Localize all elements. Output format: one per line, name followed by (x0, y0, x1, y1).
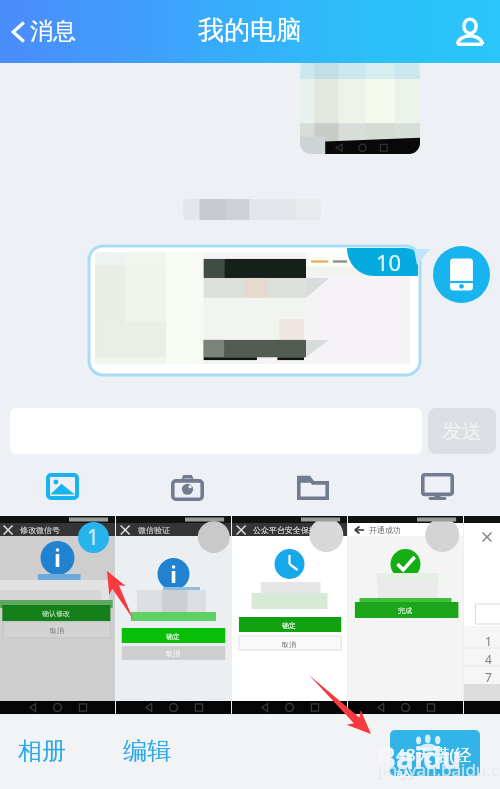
button[interactable]: Screenshot 5 (464, 516, 500, 714)
staticText: 确定 (282, 621, 296, 630)
button[interactable]: Device avatar (433, 246, 490, 303)
button[interactable]: Screenshot 2 (116, 516, 231, 714)
staticText: 修改微信号 (20, 525, 60, 535)
staticText: 编辑 (123, 736, 171, 766)
button[interactable]: 消息 (9, 17, 76, 46)
button[interactable]: Gallery (0, 459, 125, 514)
staticText: 完成 (398, 606, 412, 615)
staticText: 我的电脑 (198, 14, 302, 47)
staticText: 10 (376, 247, 402, 275)
button[interactable]: Screenshot 3 (232, 516, 347, 714)
staticText: 1 (485, 633, 492, 649)
staticText: 开通成功 (369, 525, 401, 535)
button[interactable]: Screenshot 4 (348, 516, 463, 714)
staticText: 确定 (166, 632, 180, 641)
button[interactable]: Contact profile (453, 15, 487, 49)
button[interactable]: 编辑 (123, 736, 171, 766)
staticText: 4 (485, 651, 492, 667)
button[interactable]: 相册 (18, 736, 66, 766)
staticText: 相册 (18, 736, 66, 766)
staticText: 发送 (442, 419, 482, 444)
staticText: 取消 (166, 649, 180, 658)
staticText: 确认修改 (42, 609, 70, 618)
button[interactable]: 发送 (428, 408, 496, 454)
staticText: jingyan.baidu.com (378, 758, 500, 781)
staticText: Baidu (376, 737, 462, 778)
button[interactable]: Screen (375, 459, 500, 514)
button[interactable] (89, 246, 420, 375)
button[interactable]: Camera (125, 459, 250, 514)
staticText: 48天诺(经验 (396, 743, 480, 776)
button[interactable] (183, 199, 321, 220)
staticText: 取消 (282, 640, 296, 649)
staticText: 7 (485, 669, 492, 685)
button[interactable]: Files (250, 459, 375, 514)
staticText: 消息 (30, 17, 76, 46)
button[interactable] (300, 58, 420, 154)
staticText: 公众平台安全保护 (253, 525, 317, 535)
staticText: 取消 (50, 626, 64, 635)
staticText: 微信验证 (138, 525, 170, 535)
staticText: 1 (87, 523, 100, 552)
button[interactable]: Screenshot 1 (0, 516, 115, 714)
